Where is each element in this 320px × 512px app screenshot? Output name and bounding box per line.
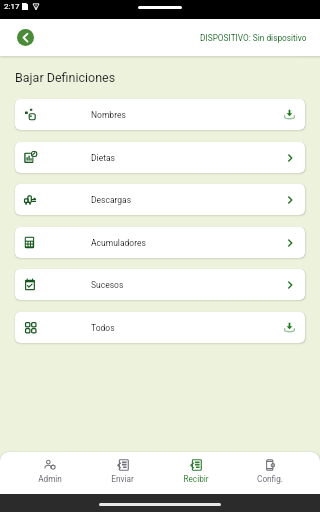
button[interactable]: Acumuladores <box>15 227 305 258</box>
staticText: Bajar Definiciones <box>15 70 116 85</box>
button[interactable]: Sucesos <box>15 269 305 300</box>
button[interactable]: Admin <box>13 452 86 494</box>
staticText: Enviar <box>111 474 134 484</box>
staticText: 2:17 <box>4 2 20 11</box>
button[interactable]: Back <box>17 29 34 46</box>
staticText: Todos <box>91 323 115 333</box>
button[interactable]: Enviar <box>86 452 159 494</box>
button[interactable]: Descargas <box>15 184 305 215</box>
staticText: Acumuladores <box>91 238 146 248</box>
button[interactable]: Nombres <box>15 99 305 130</box>
button[interactable]: Todos <box>15 312 305 343</box>
button[interactable]: Dietas <box>15 142 305 173</box>
staticText: DISPOSITIVO: Sin dispositivo <box>200 33 307 43</box>
staticText: Dietas <box>91 153 115 163</box>
button[interactable]: Recibir <box>159 452 233 494</box>
staticText: Nombres <box>91 110 126 120</box>
staticText: Admin <box>38 474 62 484</box>
staticText: Sucesos <box>91 280 124 290</box>
staticText: Recibir <box>183 474 209 484</box>
staticText: Config. <box>257 474 283 484</box>
button[interactable]: Config. <box>233 452 307 494</box>
staticText: Descargas <box>91 195 132 205</box>
